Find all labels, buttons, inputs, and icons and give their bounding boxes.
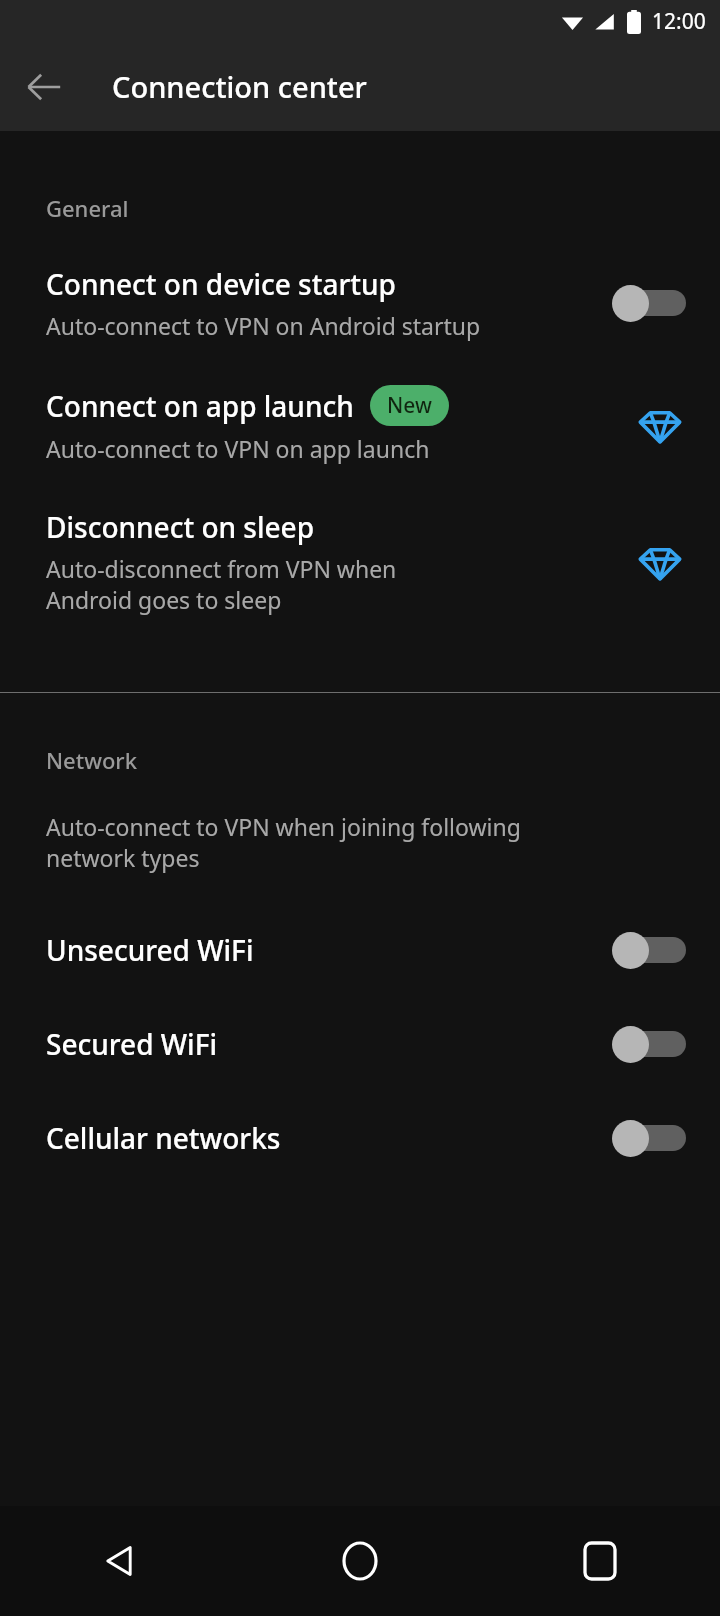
staticText: Network [46,745,137,775]
staticText: Connection center [112,67,367,106]
button[interactable]: Unsecured WiFi [0,930,720,970]
staticText: 12:00 [652,7,706,36]
button[interactable]: Toggle [612,1024,688,1064]
button[interactable]: Toggle [612,1118,688,1158]
button[interactable]: Disconnect on sleep [0,508,720,616]
staticText: Auto-connect to VPN when joining followi… [46,811,521,874]
button[interactable]: Back [0,1506,240,1616]
button[interactable]: Connect on device startup [0,265,720,341]
staticText: New [387,391,432,420]
staticText: Auto-disconnect from VPN when Android go… [46,553,397,616]
button[interactable]: Premium feature [632,534,688,590]
button[interactable]: Cellular networks [0,1118,720,1158]
button[interactable]: Home [240,1506,480,1616]
staticText: Cellular networks [46,1119,612,1157]
button[interactable]: Connect on app launch [0,385,720,464]
staticText: Disconnect on sleep [46,508,315,546]
staticText: Connect on device startup [46,265,396,303]
staticText: Connect on app launch [46,387,354,425]
button[interactable]: Premium feature [632,397,688,453]
button[interactable]: Toggle [612,930,688,970]
staticText: Auto-connect to VPN on app launch [46,433,430,464]
button[interactable]: Back [16,59,72,115]
staticText: Auto-connect to VPN on Android startup [46,310,481,341]
button[interactable]: Secured WiFi [0,1024,720,1064]
staticText: General [46,193,129,223]
button[interactable]: Toggle [612,283,688,323]
staticText: Unsecured WiFi [46,931,612,969]
button[interactable]: Recent apps [480,1506,720,1616]
staticText: Secured WiFi [46,1025,612,1063]
